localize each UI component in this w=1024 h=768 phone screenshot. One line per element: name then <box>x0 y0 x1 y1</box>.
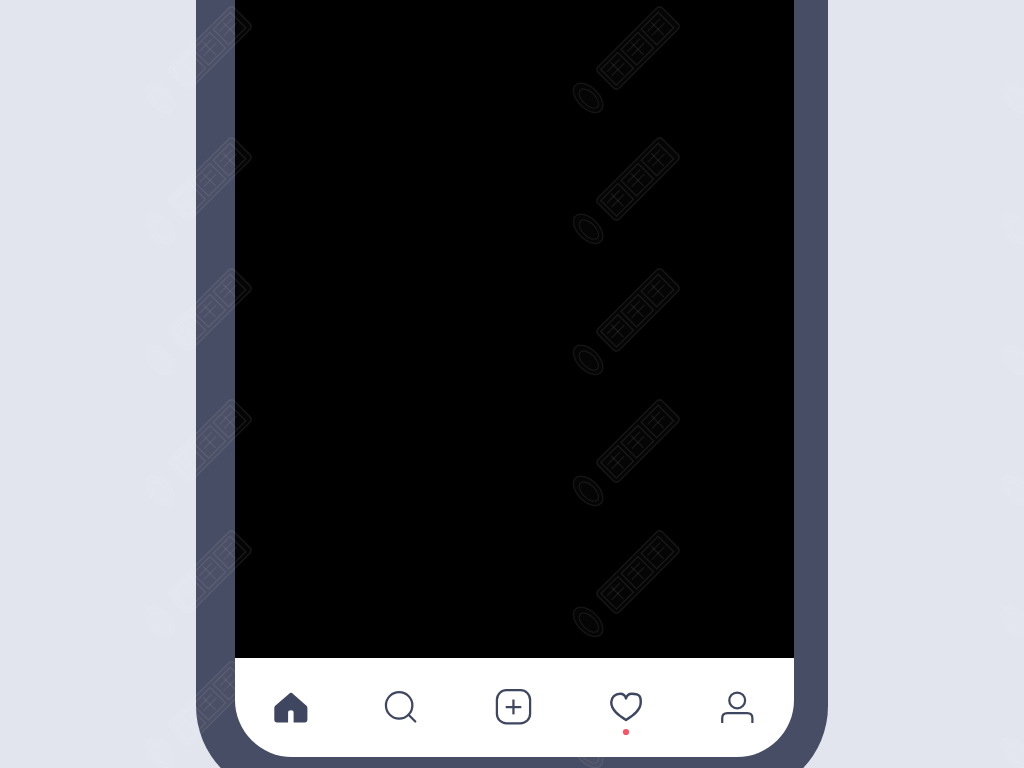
button[interactable]: Activity <box>570 657 682 756</box>
button[interactable]: Profile <box>682 657 794 756</box>
button[interactable]: Search <box>346 657 458 756</box>
button[interactable]: Create new post <box>458 657 570 756</box>
button[interactable]: Home <box>235 657 346 756</box>
